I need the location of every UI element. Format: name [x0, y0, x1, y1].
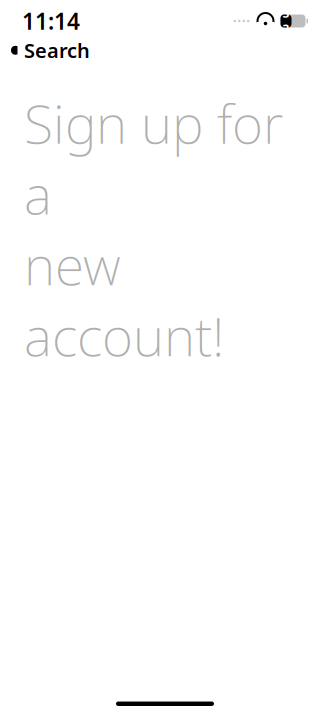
staticText: Confirm Password	[24, 689, 241, 714]
staticText: Search	[24, 37, 90, 64]
staticText: 33	[282, 5, 289, 37]
staticText: Sign up for a new account!	[24, 88, 283, 371]
button[interactable]: Search	[9, 35, 92, 66]
staticText: 11:14	[22, 6, 80, 36]
